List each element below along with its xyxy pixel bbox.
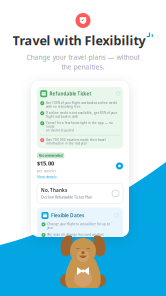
staticText: Change for any reason, no questions aske… — [47, 243, 111, 251]
staticText: Cancel for a few hours right in the app … — [46, 121, 113, 128]
staticText: Change your flight to any airline for up… — [47, 222, 113, 230]
staticText: Flexible Dates — [51, 212, 84, 219]
staticText: Travel with Flexibility — [12, 32, 145, 49]
staticText: Over 700,000 travelers made their travel — [46, 138, 106, 142]
staticText: We cover all change fees and any fare di… — [47, 233, 104, 240]
staticText: Decline Refundable Ticket Plan — [41, 194, 92, 199]
staticText: flight cost back in cash — [46, 115, 78, 118]
staticText: Recommended — [39, 153, 63, 158]
staticText: No, Thanks — [41, 187, 67, 193]
staticText: your departure — [47, 251, 69, 255]
staticText: Change your travel plans — without — [26, 53, 139, 61]
staticText: Get 100% of your flight cost back as air… — [46, 101, 117, 105]
staticText: $15.00 — [37, 160, 54, 167]
staticText: Refundable Ticket — [49, 91, 91, 97]
staticText: per traveler — [37, 168, 57, 173]
staticText: information in the last year — [46, 142, 87, 145]
staticText: If airline credit is not available, get … — [46, 111, 117, 115]
staticText: the penalties. — [61, 62, 104, 71]
staticText: View details — [37, 174, 57, 179]
staticText: with no rebooking fees — [46, 105, 80, 108]
staticText: on claims required — [46, 128, 74, 132]
